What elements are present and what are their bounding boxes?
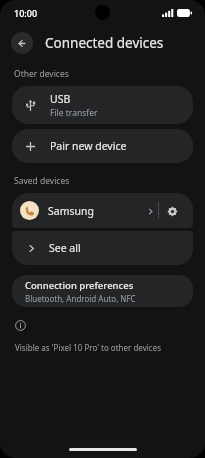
staticText: Pair new device — [50, 139, 127, 153]
button[interactable]: Samsung settings — [159, 196, 185, 226]
staticText: Samsung — [48, 204, 142, 218]
staticText: Visible as 'Pixel 10 Pro' to other devic… — [15, 342, 161, 353]
button[interactable]: Back — [11, 32, 33, 54]
button[interactable]: USB — [12, 86, 193, 124]
staticText: Connected devices — [45, 34, 164, 52]
button[interactable]: Pair new device — [12, 129, 193, 163]
staticText: Saved devices — [14, 175, 70, 187]
staticText: 10:00 — [14, 7, 38, 19]
button[interactable]: See all — [12, 231, 193, 265]
button[interactable]: Samsung — [12, 193, 193, 228]
staticText: Bluetooth, Android Auto, NFC — [25, 293, 136, 304]
staticText: See all — [49, 241, 81, 255]
staticText: Other devices — [14, 68, 69, 80]
staticText: USB — [50, 92, 71, 106]
button[interactable]: Device details — [142, 196, 158, 226]
button[interactable]: Connection preferences — [12, 275, 193, 307]
staticText: File transfer — [50, 107, 98, 119]
staticText: Connection preferences — [25, 279, 134, 292]
